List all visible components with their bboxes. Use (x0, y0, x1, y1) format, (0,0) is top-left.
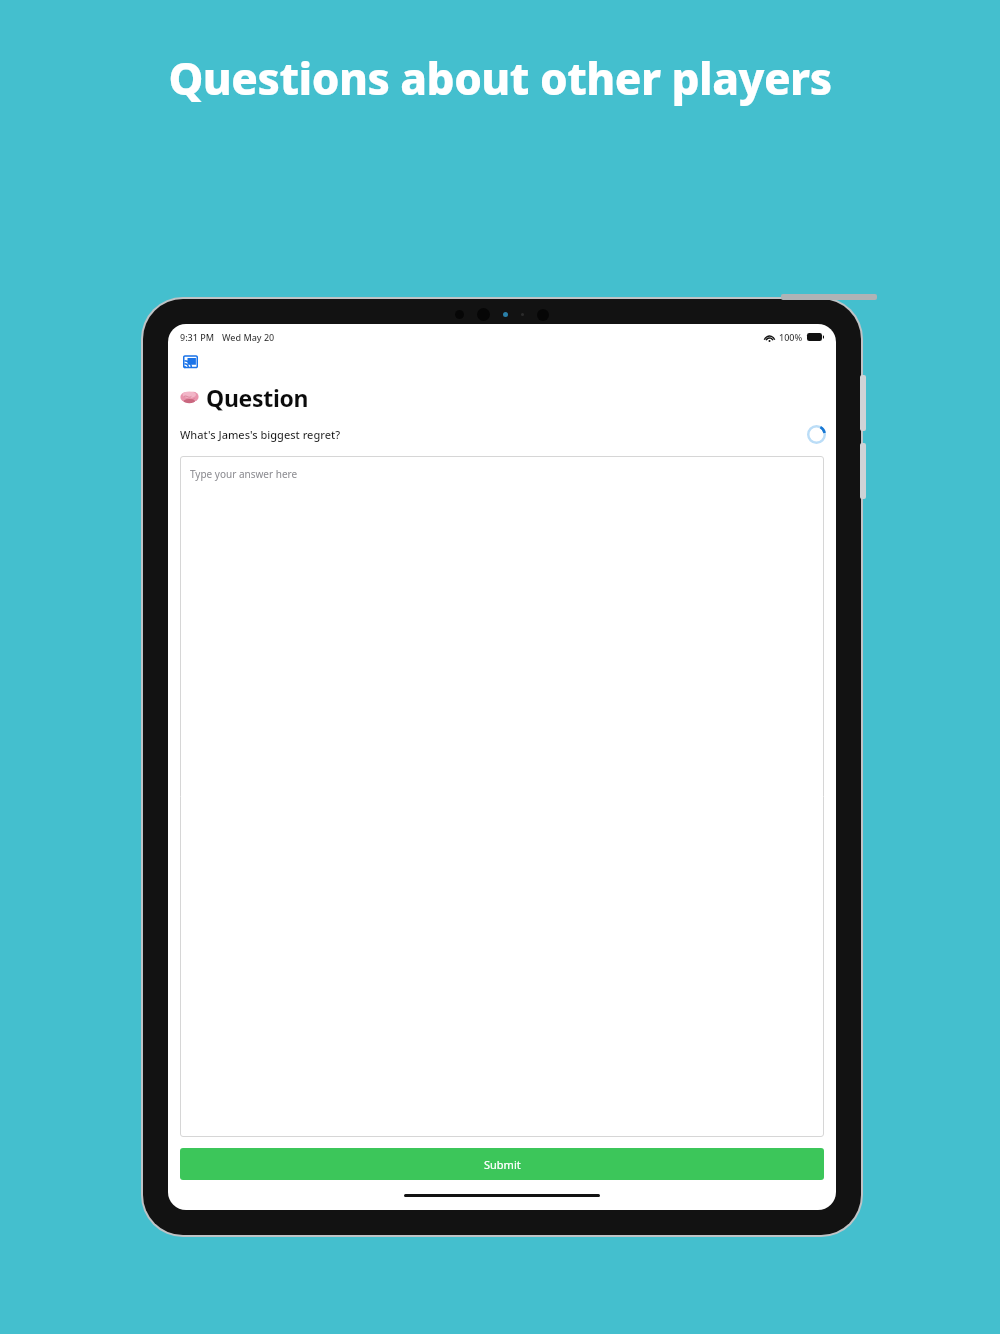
other: Volume down (860, 443, 866, 499)
staticText: Question (206, 382, 309, 413)
button[interactable]: Type your answer here (180, 456, 824, 1137)
other: Volume up (860, 375, 866, 431)
button[interactable]: Submit (180, 1148, 824, 1180)
other: Power (781, 294, 877, 300)
staticText: What's James's biggest regret? (180, 427, 341, 442)
staticText: 100% (779, 331, 803, 343)
staticText: Type your answer here (190, 467, 298, 481)
staticText: Questions about other players (168, 48, 832, 108)
staticText: Submit (484, 1157, 521, 1172)
staticText: Wed May 20 (222, 331, 275, 343)
staticText: 9:31 PM (180, 331, 214, 343)
button[interactable]: Cast (180, 352, 200, 372)
